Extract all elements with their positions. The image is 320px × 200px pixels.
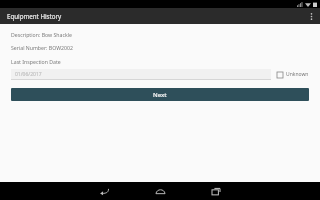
button[interactable]: Back xyxy=(94,182,114,200)
staticText: Next xyxy=(153,91,167,99)
button[interactable]: Next xyxy=(11,88,309,101)
button[interactable]: More options xyxy=(302,8,320,24)
staticText: Last Inspection Date xyxy=(11,58,61,65)
staticText: Equipment History xyxy=(7,12,62,20)
staticText: Description: Bow Shackle xyxy=(11,31,72,38)
staticText: Serial Number: BOW2002 xyxy=(11,44,73,51)
button[interactable]: Recent apps xyxy=(206,182,226,200)
button[interactable]: Unknown xyxy=(277,71,309,78)
staticText: 01/06/2017 xyxy=(15,71,42,78)
staticText: Unknown xyxy=(286,71,309,78)
button[interactable]: Home xyxy=(150,182,170,200)
button[interactable]: 01/06/2017 xyxy=(11,69,271,80)
